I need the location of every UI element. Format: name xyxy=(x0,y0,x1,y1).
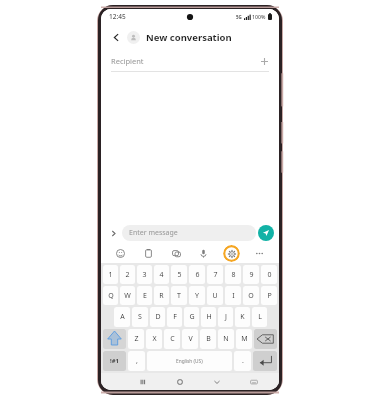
button[interactable]: !#1 xyxy=(103,351,126,371)
staticText: 5G xyxy=(236,14,242,20)
staticText: 2 xyxy=(125,270,130,280)
staticText: 9 xyxy=(249,270,254,280)
button[interactable]: Back xyxy=(108,29,124,45)
button[interactable]: Q xyxy=(103,286,118,305)
button[interactable]: Keyboard layout xyxy=(235,373,272,390)
button[interactable]: T xyxy=(171,286,187,305)
staticText: L xyxy=(258,312,262,322)
staticText: B xyxy=(206,334,211,344)
staticText: . xyxy=(242,356,244,366)
button[interactable]: A xyxy=(114,307,130,327)
staticText: V xyxy=(188,334,193,344)
button[interactable]: Home xyxy=(161,373,198,390)
button[interactable]: Gallery xyxy=(140,245,157,262)
button[interactable]: 1 xyxy=(103,265,118,284)
button[interactable]: More options xyxy=(251,245,268,262)
button[interactable]: G xyxy=(184,307,199,327)
button[interactable]: Backspace xyxy=(254,329,277,349)
button[interactable]: C xyxy=(164,329,180,349)
button[interactable]: Expand xyxy=(107,227,120,240)
button[interactable]: Voice xyxy=(195,245,212,262)
staticText: O xyxy=(248,291,254,301)
staticText: 3 xyxy=(142,270,147,280)
staticText: T xyxy=(177,291,181,301)
staticText: 6 xyxy=(195,270,200,280)
staticText: Enter message xyxy=(129,228,178,238)
staticText: J xyxy=(225,312,227,322)
button[interactable]: D xyxy=(150,307,165,327)
button[interactable]: M xyxy=(236,329,252,349)
button[interactable]: . xyxy=(234,351,251,371)
staticText: X xyxy=(152,334,157,344)
button[interactable]: W xyxy=(120,286,135,305)
staticText: 100% xyxy=(252,13,266,20)
button[interactable]: X xyxy=(146,329,162,349)
staticText: , xyxy=(136,356,138,366)
button[interactable]: Enter message xyxy=(122,225,256,241)
button[interactable]: 3 xyxy=(137,265,152,284)
button[interactable]: Enter xyxy=(253,351,277,371)
staticText: Y xyxy=(195,291,199,301)
staticText: R xyxy=(159,291,164,301)
staticText: I xyxy=(232,291,235,301)
button[interactable]: Y xyxy=(189,286,205,305)
button[interactable]: 4 xyxy=(154,265,169,284)
button[interactable]: B xyxy=(200,329,216,349)
button[interactable]: Contact xyxy=(127,31,140,44)
staticText: New conversation xyxy=(146,31,232,44)
button[interactable]: L xyxy=(252,307,267,327)
button[interactable]: 5 xyxy=(171,265,187,284)
button[interactable]: S xyxy=(132,307,148,327)
button[interactable]: Hide keyboard xyxy=(198,373,235,390)
staticText: S xyxy=(138,312,142,322)
button[interactable]: R xyxy=(154,286,169,305)
button[interactable]: 2 xyxy=(120,265,135,284)
button[interactable]: Shift xyxy=(103,329,126,349)
button[interactable]: I xyxy=(225,286,241,305)
button[interactable]: K xyxy=(235,307,250,327)
staticText: M xyxy=(241,334,248,344)
button[interactable]: H xyxy=(201,307,216,327)
staticText: C xyxy=(170,334,175,344)
button[interactable]: Emoji xyxy=(112,245,129,262)
button[interactable]: E xyxy=(137,286,152,305)
button[interactable]: 7 xyxy=(207,265,223,284)
staticText: Q xyxy=(108,291,114,301)
button[interactable]: Z xyxy=(128,329,144,349)
button[interactable]: Add recipient xyxy=(258,55,270,67)
staticText: U xyxy=(212,291,218,301)
staticText: K xyxy=(240,312,245,322)
button[interactable]: F xyxy=(167,307,182,327)
staticText: D xyxy=(155,312,161,322)
button[interactable]: 0 xyxy=(261,265,277,284)
button[interactable]: Recipient xyxy=(101,50,279,71)
button[interactable]: U xyxy=(207,286,223,305)
staticText: 8 xyxy=(231,270,236,280)
button[interactable]: N xyxy=(218,329,234,349)
button[interactable]: 9 xyxy=(243,265,259,284)
button[interactable]: Settings xyxy=(223,245,240,262)
staticText: Z xyxy=(134,334,139,344)
staticText: F xyxy=(173,312,177,322)
button[interactable]: J xyxy=(218,307,233,327)
staticText: W xyxy=(124,291,131,301)
staticText: N xyxy=(223,334,229,344)
staticText: E xyxy=(143,291,147,301)
staticText: P xyxy=(267,291,272,301)
staticText: 7 xyxy=(213,270,218,280)
button[interactable]: V xyxy=(182,329,198,349)
button[interactable]: , xyxy=(128,351,145,371)
button[interactable]: 8 xyxy=(225,265,241,284)
staticText: 5 xyxy=(177,270,182,280)
button[interactable]: Stickers xyxy=(168,245,185,262)
button[interactable]: Send xyxy=(258,225,274,241)
staticText: H xyxy=(206,312,212,322)
staticText: 0 xyxy=(267,270,272,280)
button[interactable]: P xyxy=(261,286,277,305)
staticText: 12:45 xyxy=(109,12,126,21)
button[interactable]: O xyxy=(243,286,259,305)
button[interactable]: English (US) xyxy=(147,351,232,371)
staticText: Recipient xyxy=(111,56,258,66)
button[interactable]: 6 xyxy=(189,265,205,284)
button[interactable]: Recents xyxy=(124,373,161,390)
